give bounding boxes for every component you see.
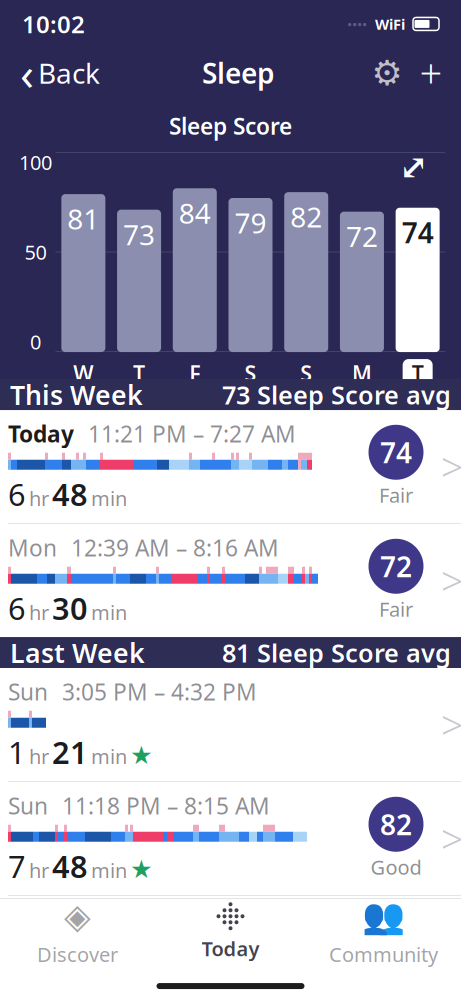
- button[interactable]: ◈: [1, 899, 154, 965]
- staticText: hr: [29, 857, 49, 884]
- staticText: 12:58 AM – 8:56 AM: [55, 898, 263, 928]
- staticText: 30: [52, 588, 88, 628]
- staticText: W: [73, 359, 93, 387]
- staticText: 1: [8, 732, 26, 772]
- staticText: 50: [24, 239, 46, 265]
- button[interactable]: Sun: [0, 668, 461, 781]
- staticText: Sat: [8, 898, 41, 928]
- staticText: 74: [380, 434, 412, 471]
- staticText: 73: [123, 216, 155, 253]
- staticText: ····: [347, 12, 367, 36]
- staticText: ⚙: [371, 53, 402, 93]
- staticText: 12:39 AM – 8:16 AM: [71, 533, 279, 563]
- staticText: 6: [8, 588, 26, 628]
- staticText: hr: [29, 599, 49, 626]
- staticText: Fair: [379, 596, 413, 622]
- staticText: Sun: [8, 791, 48, 821]
- button[interactable]: Sat: [0, 896, 461, 930]
- staticText: 82: [380, 806, 412, 843]
- staticText: F: [189, 359, 200, 387]
- staticText: >: [440, 440, 461, 493]
- button[interactable]: Today: [154, 899, 307, 965]
- staticText: hr: [29, 743, 49, 770]
- staticText: 84: [179, 194, 211, 231]
- button[interactable]: Mon: [0, 524, 461, 637]
- staticText: Sun: [8, 677, 48, 707]
- staticText: 72: [380, 548, 412, 585]
- staticText: ◈: [64, 897, 91, 936]
- staticText: 81: [67, 200, 99, 237]
- button[interactable]: Today: [0, 410, 461, 523]
- staticText: 48: [52, 846, 88, 886]
- staticText: 6: [8, 474, 26, 514]
- staticText: 10:02: [22, 8, 85, 40]
- staticText: 81 Sleep Score avg: [222, 636, 451, 669]
- staticText: 73 Sleep Score avg: [222, 378, 451, 411]
- button[interactable]: 👥: [307, 899, 460, 965]
- staticText: >: [440, 812, 461, 865]
- button[interactable]: Expand chart: [393, 149, 433, 185]
- staticText: +: [419, 46, 442, 99]
- staticText: Sleep Score: [169, 111, 292, 141]
- staticText: 79: [234, 204, 266, 241]
- staticText: This Week: [10, 377, 143, 412]
- staticText: 0: [30, 328, 41, 355]
- staticText: 82: [290, 198, 322, 235]
- staticText: T: [133, 359, 145, 387]
- staticText: 72: [346, 218, 378, 255]
- staticText: 21: [52, 732, 88, 772]
- staticText: min: [91, 599, 127, 626]
- staticText: min: [91, 485, 127, 512]
- staticText: 11:21 PM – 7:27 AM: [88, 419, 296, 449]
- staticText: S: [244, 359, 256, 387]
- staticText: Fair: [379, 482, 413, 508]
- staticText: M: [352, 359, 372, 387]
- staticText: min: [91, 743, 127, 770]
- staticText: S: [300, 359, 312, 387]
- staticText: Good: [370, 854, 421, 880]
- staticText: Discover: [37, 941, 118, 967]
- staticText: >: [440, 698, 461, 751]
- staticText: 3:05 PM – 4:32 PM: [62, 677, 257, 707]
- staticText: Today: [201, 935, 259, 962]
- staticText: >: [440, 554, 461, 607]
- staticText: 100: [19, 149, 52, 176]
- staticText: 👥: [362, 896, 405, 936]
- staticText: 11:18 PM – 8:15 AM: [62, 791, 270, 821]
- staticText: T: [412, 359, 424, 387]
- staticText: Today: [8, 419, 74, 449]
- staticText: min: [91, 857, 127, 884]
- staticText: 48: [52, 474, 88, 514]
- button[interactable]: ‹: [8, 51, 112, 95]
- staticText: Back: [38, 54, 100, 92]
- staticText: Mon: [8, 533, 57, 563]
- staticText: Community: [329, 941, 438, 968]
- staticText: WiFi: [375, 14, 405, 34]
- staticText: 7: [8, 846, 26, 886]
- staticText: Last Week: [10, 635, 145, 670]
- button[interactable]: Sun: [0, 782, 461, 895]
- staticText: Sleep: [202, 54, 275, 92]
- staticText: ‹: [20, 43, 34, 103]
- button[interactable]: Settings: [365, 51, 409, 95]
- staticText: ★: [130, 741, 153, 770]
- staticText: hr: [29, 485, 49, 512]
- button[interactable]: Add: [409, 51, 453, 95]
- staticText: ⤢: [399, 147, 428, 187]
- staticText: 74: [402, 214, 434, 251]
- staticText: ★: [130, 855, 153, 884]
